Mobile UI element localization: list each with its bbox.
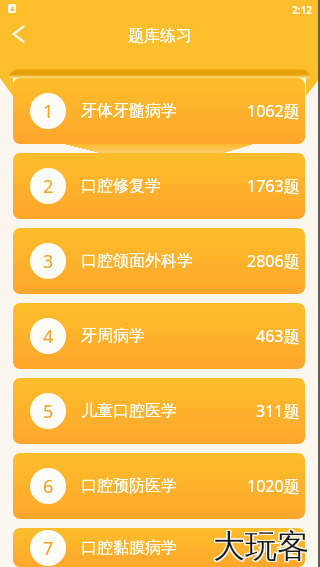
button[interactable]: 5 (13, 378, 305, 444)
staticText: 大玩客 (214, 527, 310, 567)
staticText: 311题 (256, 400, 300, 422)
staticText: 口腔黏膜病学 (81, 538, 177, 558)
staticText: 牙体牙髓病学 (81, 101, 177, 121)
button[interactable]: 1 (13, 78, 305, 144)
staticText: 口腔修复学 (81, 176, 161, 196)
button[interactable]: 7 (13, 528, 305, 567)
button[interactable]: 6 (13, 453, 305, 519)
staticText: 1763题 (247, 175, 300, 197)
staticText: 313题 (256, 537, 300, 559)
staticText: 大玩客 (212, 526, 308, 566)
staticText: 1 (43, 99, 54, 124)
button[interactable]: 3 (13, 228, 305, 294)
staticText: 大玩客 (214, 526, 310, 566)
staticText: 题库练习 (128, 26, 192, 46)
staticText: 463题 (256, 325, 300, 347)
staticText: 5 (43, 399, 54, 424)
staticText: 3 (43, 249, 54, 274)
staticText: 口腔预防医学 (81, 476, 177, 496)
staticText: 儿童口腔医学 (81, 401, 177, 421)
staticText: 6 (43, 474, 54, 499)
staticText: 大玩客 (213, 525, 309, 565)
button[interactable]: 4 (13, 303, 305, 369)
staticText: 口腔颌面外科学 (81, 251, 193, 271)
staticText: 大玩客 (212, 527, 308, 567)
staticText: 2:12 (292, 3, 312, 17)
button[interactable]: Back (2, 18, 34, 50)
staticText: 大玩客 (212, 525, 308, 565)
staticText: 大玩客 (213, 526, 309, 566)
staticText: 大玩客 (213, 527, 309, 567)
staticText: 7 (43, 536, 54, 561)
staticText: 2 (43, 174, 54, 199)
staticText: 1020题 (247, 475, 300, 497)
staticText: 2806题 (247, 250, 300, 272)
staticText: 4 (43, 324, 54, 349)
staticText: 1062题 (247, 100, 300, 122)
staticText: 牙周病学 (81, 326, 145, 346)
button[interactable]: 2 (13, 153, 305, 219)
staticText: 大玩客 (214, 525, 310, 565)
